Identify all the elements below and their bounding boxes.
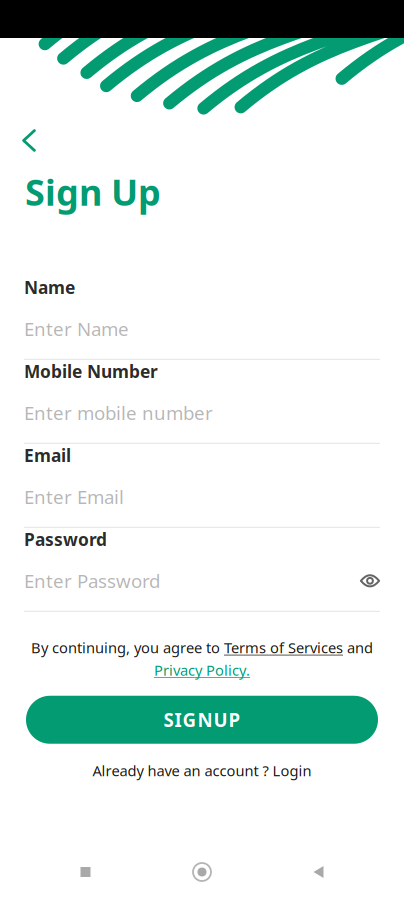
staticText: Sign Up — [25, 168, 161, 216]
staticText: Privacy Policy. — [154, 660, 250, 680]
staticText: Password — [24, 528, 107, 551]
button[interactable]: Already have an account ? Login — [0, 761, 404, 780]
staticText: SIGNUP — [163, 707, 240, 732]
button[interactable]: Privacy Policy. — [154, 660, 250, 680]
staticText: Name — [24, 276, 75, 299]
button[interactable]: Back — [0, 124, 52, 157]
staticText: Enter mobile number — [24, 400, 213, 425]
button[interactable]: Show password — [360, 573, 380, 588]
staticText: Enter Name — [24, 316, 129, 341]
staticText: By continuing, you agree to Terms of Ser… — [31, 638, 373, 657]
staticText: Enter Password — [24, 568, 160, 593]
button[interactable]: Recent apps — [54, 850, 116, 894]
button[interactable]: SIGNUP — [26, 696, 378, 744]
staticText: Enter Email — [24, 484, 124, 509]
staticText: Mobile Number — [24, 360, 158, 383]
staticText: Email — [24, 444, 71, 467]
button[interactable]: Home — [171, 850, 233, 894]
button[interactable]: Back — [287, 850, 349, 894]
staticText: Already have an account ? Login — [92, 761, 311, 780]
